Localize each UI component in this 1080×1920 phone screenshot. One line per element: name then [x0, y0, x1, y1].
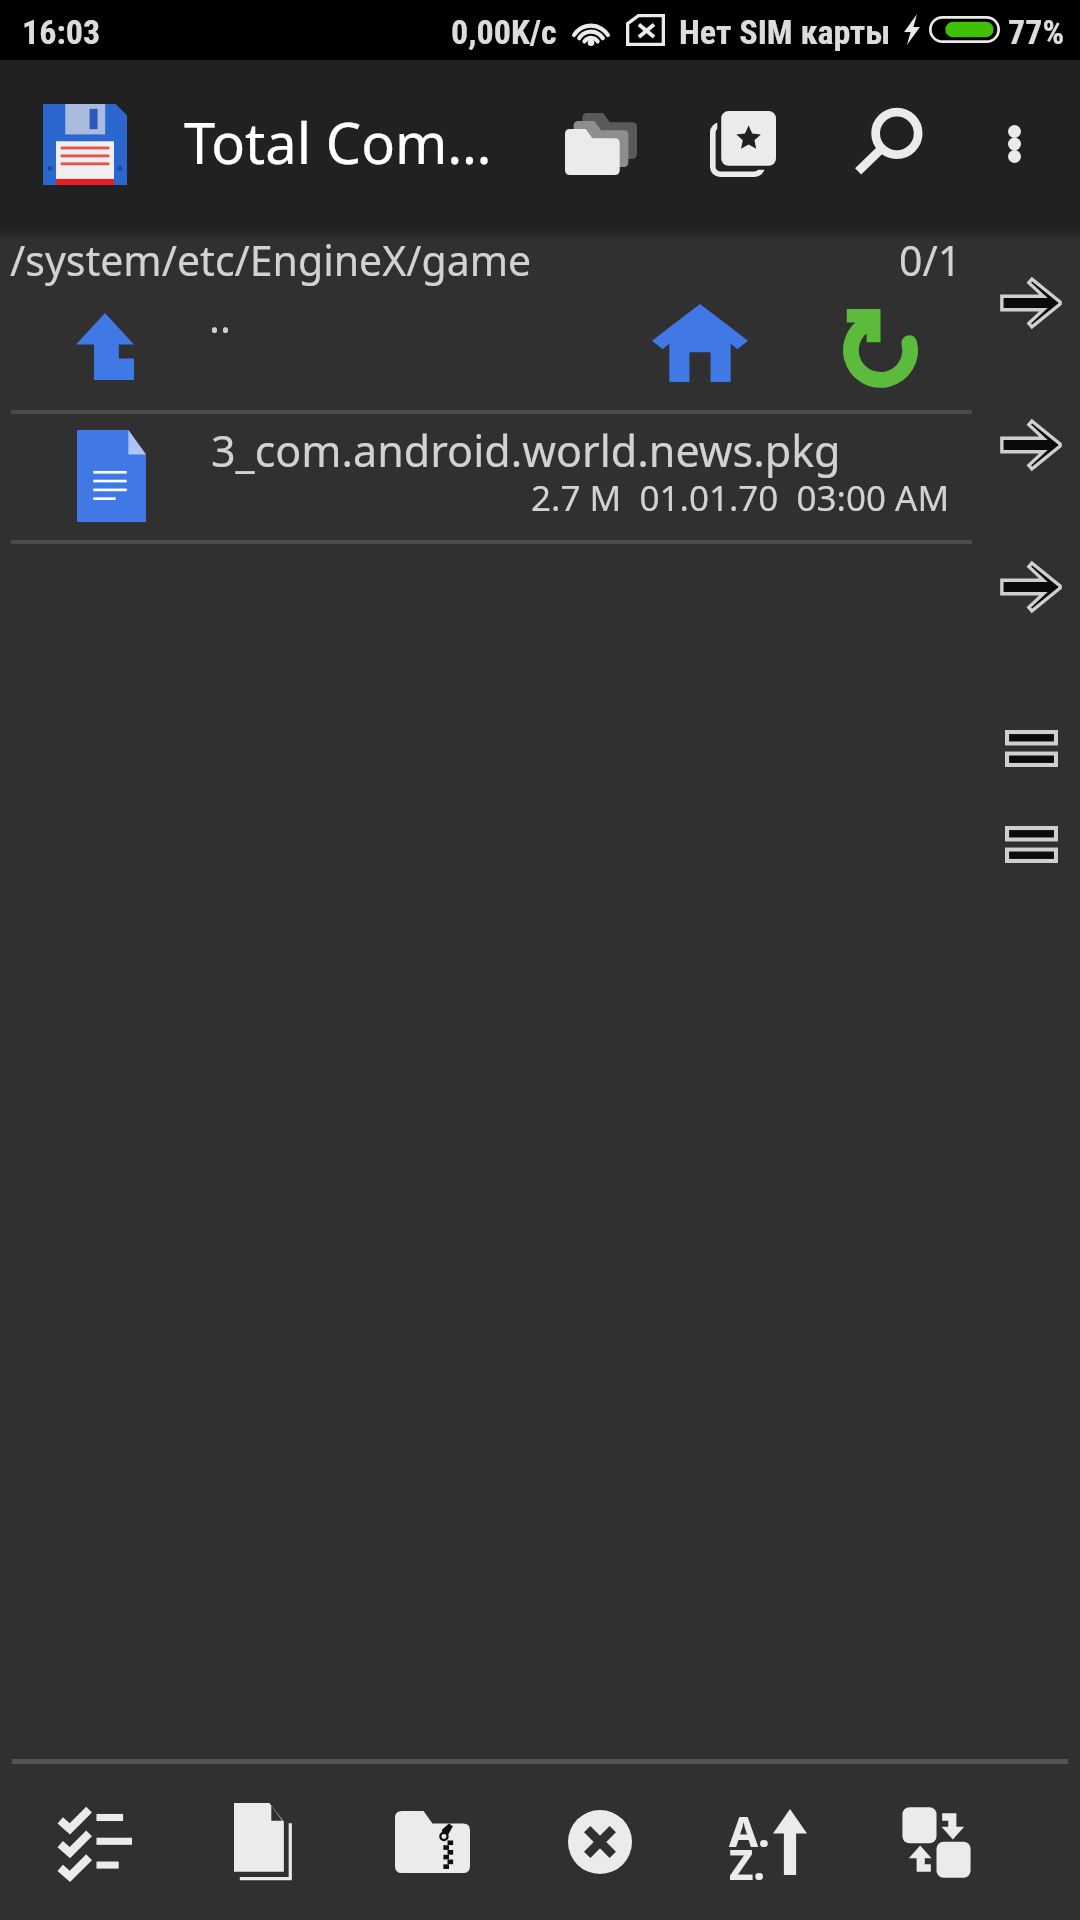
button[interactable]: Select: [11, 1764, 179, 1920]
button[interactable]: Zip: [348, 1764, 516, 1920]
staticText: Нет SIM карты: [679, 12, 891, 52]
staticText: 0,00K/c: [451, 12, 557, 52]
button[interactable]: Total Commander: [28, 87, 142, 201]
staticText: ..: [209, 289, 231, 345]
button[interactable]: Search: [845, 60, 929, 227]
button[interactable]: Exchange panels: [852, 1764, 1020, 1920]
staticText: 2.7 M 01.01.70 03:00 AM: [531, 474, 950, 522]
button[interactable]: Panel layout: [987, 800, 1075, 888]
button[interactable]: Panel mode: [987, 704, 1075, 792]
button[interactable]: Copy right: [987, 401, 1075, 489]
staticText: Z.: [729, 1835, 766, 1892]
button[interactable]: Move right: [987, 259, 1075, 347]
button[interactable]: New file: [179, 1764, 347, 1920]
staticText: 16:03: [22, 12, 101, 52]
button[interactable]: Sort: [684, 1764, 852, 1920]
staticText: 77%: [1008, 12, 1065, 52]
button[interactable]: ..: [0, 293, 1080, 409]
staticText: A.: [729, 1802, 770, 1859]
button[interactable]: Cancel: [516, 1764, 684, 1920]
staticText: /system/etc/EngineX/game: [10, 232, 532, 288]
button[interactable]: 3_com.android.world.news.pkg: [0, 413, 1080, 539]
button[interactable]: Bookmarks: [701, 60, 785, 227]
staticText: 3_com.android.world.news.pkg: [211, 421, 841, 480]
button[interactable]: Open folders: [559, 60, 643, 227]
staticText: Total Com…: [184, 104, 492, 180]
button[interactable]: More options: [972, 60, 1056, 227]
button[interactable]: Send right: [987, 543, 1075, 631]
staticText: 0/1: [899, 232, 962, 288]
